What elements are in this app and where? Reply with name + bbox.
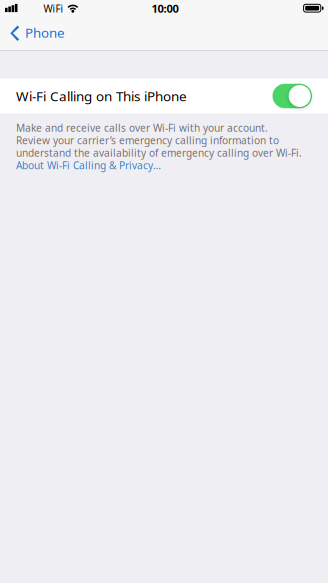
staticText: About Wi-Fi Calling & Privacy… (16, 158, 161, 172)
staticText: Review your carrier’s emergency calling … (16, 133, 279, 147)
staticText: 10:00 (151, 1, 178, 16)
button[interactable]: Wi-Fi Calling on This iPhone (0, 78, 328, 113)
staticText: Phone (25, 23, 65, 42)
staticText: understand the availability of emergency… (16, 146, 302, 160)
button[interactable]: About Wi-Fi Calling & Privacy… (16, 159, 161, 171)
staticText: Make and receive calls over Wi-Fi with y… (16, 121, 268, 135)
staticText: WiFi (43, 2, 63, 15)
staticText: Wi-Fi Calling on This iPhone (16, 87, 187, 105)
button[interactable]: Phone (0, 20, 75, 50)
